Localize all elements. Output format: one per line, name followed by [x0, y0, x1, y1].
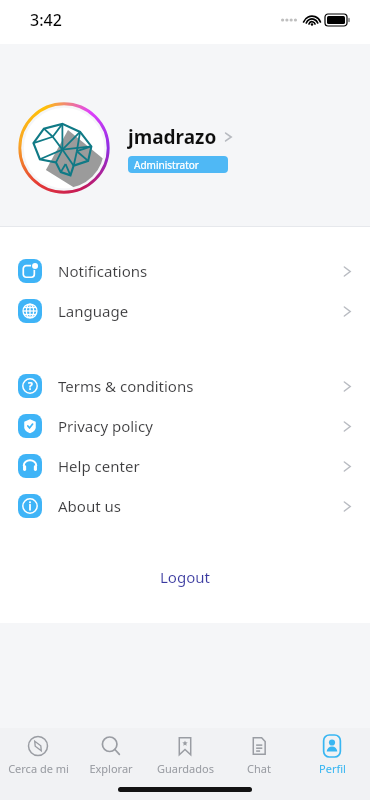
staticText: About us — [58, 496, 121, 516]
staticText: Help center — [58, 456, 140, 476]
staticText: Guardados — [157, 761, 214, 776]
staticText: 3:42 — [30, 9, 62, 31]
button[interactable]: Help center — [0, 454, 370, 478]
staticText: Administrator — [134, 158, 199, 172]
button[interactable]: Cerca de mi — [2, 735, 74, 776]
staticText: Language — [58, 301, 129, 321]
button[interactable]: Perfil — [296, 735, 368, 776]
staticText: Explorar — [89, 761, 133, 776]
staticText: Notifications — [58, 261, 148, 281]
button[interactable]: ? — [0, 374, 370, 398]
staticText: Terms & conditions — [58, 376, 194, 396]
button[interactable]: Administrator — [128, 156, 228, 173]
button[interactable]: Privacy policy — [0, 414, 370, 438]
staticText: jmadrazo — [128, 124, 217, 150]
button[interactable]: Notifications — [0, 259, 370, 283]
button[interactable]: Explorar — [75, 735, 147, 776]
staticText: ? — [28, 379, 33, 393]
staticText: Cerca de mi — [8, 761, 69, 776]
button[interactable]: Language — [0, 299, 370, 323]
staticText: Chat — [247, 761, 271, 776]
button[interactable]: jmadrazo — [18, 102, 233, 194]
button[interactable]: Chat — [223, 735, 295, 776]
button[interactable]: Logout — [0, 567, 370, 587]
staticText: Logout — [160, 567, 210, 587]
staticText: Perfil — [319, 761, 346, 776]
button[interactable]: About us — [0, 494, 370, 518]
button[interactable]: Guardados — [149, 735, 221, 776]
staticText: Privacy policy — [58, 416, 153, 436]
